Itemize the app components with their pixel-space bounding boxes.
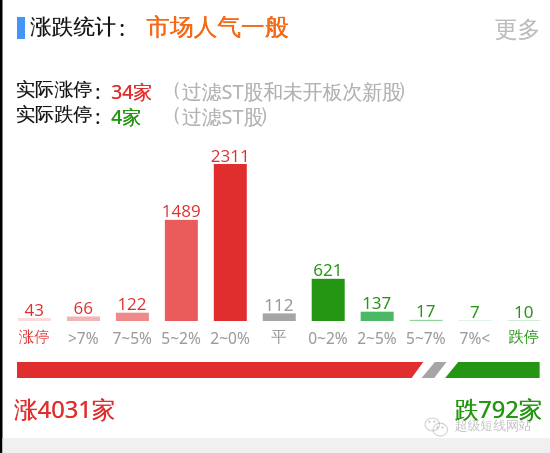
button[interactable] <box>14 8 294 44</box>
button[interactable]: 更多 <box>486 8 544 44</box>
